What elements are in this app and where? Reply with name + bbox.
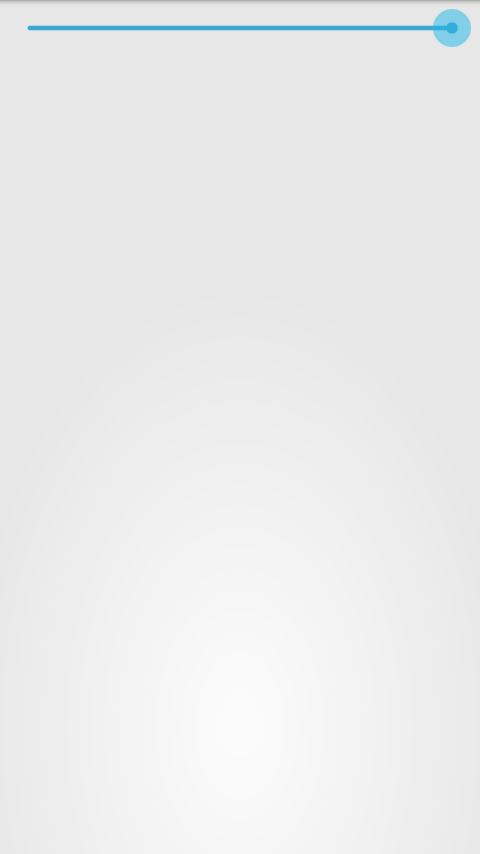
button[interactable]: Slider [0,0,480,56]
